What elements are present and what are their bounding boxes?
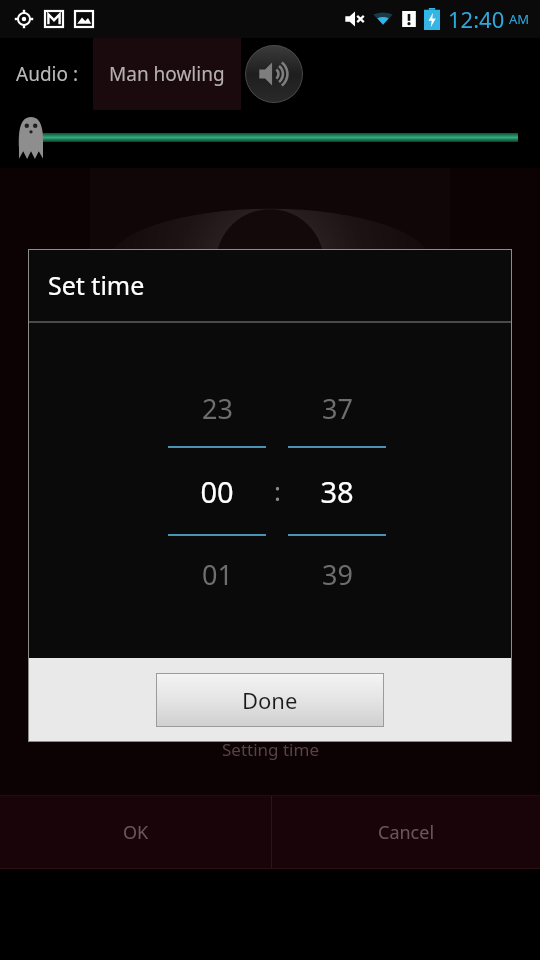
staticText: Done	[242, 685, 298, 715]
staticText: 00	[200, 472, 234, 511]
staticText: 01	[202, 556, 233, 593]
button[interactable]: 23	[168, 370, 266, 446]
staticText: Setting time	[222, 738, 319, 761]
staticText: Audio :	[16, 61, 78, 87]
button[interactable]: Play sound	[245, 45, 303, 103]
staticText: 38	[320, 472, 354, 511]
staticText: Man howling	[109, 61, 225, 87]
button[interactable]: Done	[156, 673, 384, 727]
button[interactable]: 01	[168, 536, 266, 612]
button[interactable]: 38	[288, 448, 386, 534]
staticText: 39	[322, 556, 353, 593]
button[interactable]: 37	[288, 370, 386, 446]
button[interactable]: Cancel	[272, 796, 540, 868]
button[interactable]: OK	[0, 796, 271, 868]
staticText: Set time	[48, 268, 145, 302]
staticText: 37	[322, 390, 353, 427]
button[interactable]: Man howling	[93, 38, 241, 110]
staticText: 23	[202, 390, 233, 427]
staticText: 12:40	[448, 4, 505, 34]
staticText: Cancel	[378, 820, 435, 845]
button[interactable]: 00	[168, 448, 266, 534]
button[interactable]: 39	[288, 536, 386, 612]
staticText: OK	[123, 820, 149, 845]
staticText: :	[274, 473, 281, 508]
staticText: AM	[509, 10, 530, 28]
